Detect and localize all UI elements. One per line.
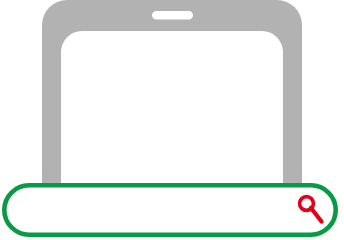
button[interactable]: Search [0, 0, 344, 240]
